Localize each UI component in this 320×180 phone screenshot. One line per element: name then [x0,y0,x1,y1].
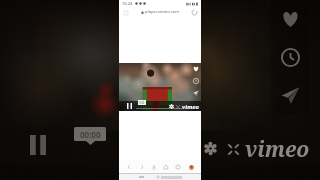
button[interactable]: Profile [187,163,195,171]
button[interactable]: Back [125,163,133,171]
button[interactable]: Watch later [190,75,201,87]
button[interactable]: Pause video [127,103,132,109]
button[interactable]: Like [190,63,201,75]
staticText: player.vimeo.com [145,9,180,15]
button[interactable]: Downloads [150,163,158,171]
button[interactable]: Settings [169,104,174,109]
button[interactable]: Settings [204,142,217,155]
staticText: 00:00 [80,129,101,140]
button[interactable]: Watch later [271,38,309,76]
button[interactable]: Home [162,163,170,171]
button[interactable]: Fullscreen [227,143,240,156]
button[interactable]: Tab switcher [122,9,129,16]
button[interactable]: Share [190,87,201,99]
button[interactable]: Tabs [174,163,182,171]
button[interactable]: Fullscreen [176,105,180,109]
staticText: vimeo [182,103,199,110]
button[interactable]: Reload [191,9,198,16]
button[interactable]: Like [271,0,309,38]
button[interactable]: Share [271,76,309,114]
button[interactable]: Forward [138,163,146,171]
staticText: 0:00 [139,101,145,105]
button[interactable]: Vimeo [245,135,310,164]
button[interactable]: Pause [30,135,46,155]
staticText: 10:24 [122,1,133,6]
staticText: vimeo [245,135,310,164]
